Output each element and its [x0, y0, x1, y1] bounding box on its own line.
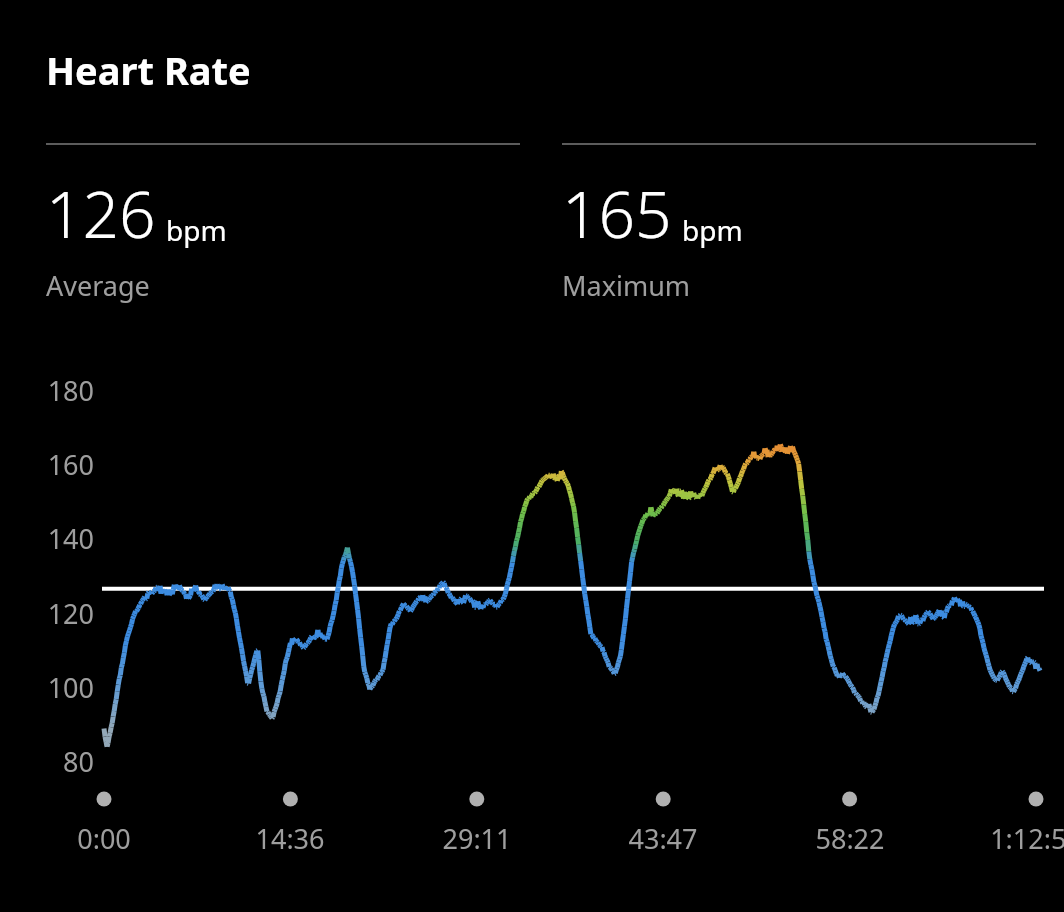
- staticText: 58:22: [760, 820, 940, 857]
- staticText: Average: [46, 267, 150, 304]
- staticText: 43:47: [573, 820, 753, 857]
- staticText: 0:00: [14, 820, 194, 857]
- staticText: Maximum: [562, 267, 691, 304]
- staticText: 140: [30, 520, 94, 557]
- staticText: 126: [46, 170, 156, 257]
- staticText: 80: [30, 743, 94, 780]
- staticText: 160: [30, 446, 94, 483]
- staticText: 14:36: [200, 820, 380, 857]
- staticText: 1:12:58: [946, 820, 1064, 857]
- staticText: 100: [30, 669, 94, 706]
- staticText: 120: [30, 595, 94, 632]
- staticText: 165: [562, 170, 672, 257]
- staticText: bpm: [166, 211, 227, 249]
- button[interactable]: 165: [562, 170, 1036, 304]
- staticText: bpm: [682, 211, 743, 249]
- staticText: Heart Rate: [46, 44, 251, 96]
- staticText: 29:11: [387, 820, 567, 857]
- button[interactable]: 126: [46, 170, 520, 304]
- staticText: 180: [30, 372, 94, 409]
